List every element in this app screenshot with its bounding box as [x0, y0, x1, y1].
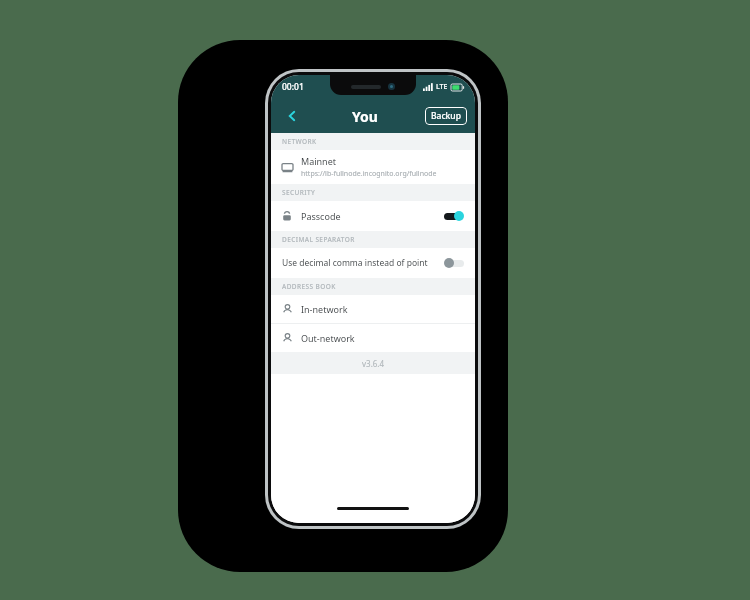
staticText: https://lb-fullnode.incognito.org/fullno… [301, 169, 437, 179]
staticText: Out-network [301, 332, 355, 344]
button[interactable]: Passcode on [444, 211, 464, 221]
staticText: 00:01 [282, 81, 304, 93]
staticText: You [352, 107, 378, 126]
staticText: DECIMAL SEPARATOR [282, 235, 355, 244]
button[interactable]: Mainnet [271, 150, 475, 184]
staticText: Backup [431, 110, 461, 122]
staticText: LTE [436, 82, 448, 92]
staticText: v3.6.4 [362, 358, 385, 369]
staticText: SECURITY [282, 188, 316, 197]
button[interactable]: Back [279, 103, 305, 129]
button[interactable]: Use decimal comma off [444, 258, 464, 268]
staticText: NETWORK [282, 137, 317, 146]
button[interactable]: Backup [425, 107, 467, 125]
staticText: Passcode [301, 210, 341, 222]
button[interactable]: Passcode [271, 201, 475, 231]
staticText: Mainnet [301, 155, 336, 167]
button[interactable]: Use decimal comma instead of point [271, 248, 475, 278]
staticText: In-network [301, 303, 348, 315]
staticText: Use decimal comma instead of point [282, 257, 428, 269]
button[interactable]: Out-network [271, 324, 475, 352]
button[interactable]: In-network [271, 295, 475, 323]
staticText: ADDRESS BOOK [282, 282, 336, 291]
